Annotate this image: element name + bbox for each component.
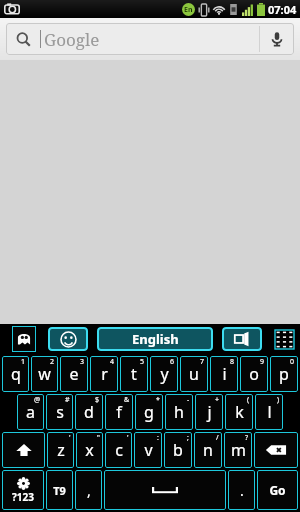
button[interactable]: Google <box>6 23 294 55</box>
staticText: o <box>249 363 259 385</box>
staticText: + <box>215 395 220 405</box>
staticText: 2 <box>50 357 55 367</box>
staticText: Go <box>269 482 286 498</box>
staticText: ) <box>277 395 280 405</box>
staticText: ( <box>247 395 250 405</box>
button[interactable]: c <box>105 432 132 468</box>
button[interactable]: T9 <box>46 470 73 510</box>
button[interactable]: Symbols <box>2 470 44 510</box>
staticText: i <box>222 363 227 385</box>
staticText: k <box>235 401 244 423</box>
button[interactable]: n <box>194 432 222 468</box>
staticText: 07:04 <box>268 2 297 17</box>
staticText: ' <box>127 433 129 443</box>
staticText: . <box>240 481 244 500</box>
button[interactable]: o <box>240 356 268 392</box>
staticText: j <box>207 401 212 423</box>
staticText: c <box>115 439 123 461</box>
staticText: y <box>160 363 169 385</box>
staticText: - <box>187 395 190 405</box>
staticText: g <box>144 401 154 423</box>
button[interactable]: l <box>255 394 283 430</box>
staticText: p <box>279 363 289 385</box>
staticText: ' <box>69 433 71 443</box>
staticText: l <box>267 401 272 423</box>
button[interactable]: f <box>105 394 133 430</box>
button[interactable]: Ghost <box>12 326 36 352</box>
staticText: / <box>216 433 219 443</box>
staticText: ; <box>187 433 189 443</box>
button[interactable]: . <box>228 470 255 510</box>
staticText: e <box>69 363 79 385</box>
button[interactable]: u <box>180 356 208 392</box>
staticText: n <box>203 439 213 461</box>
button[interactable]: r <box>90 356 118 392</box>
staticText: * <box>156 395 160 405</box>
staticText: : <box>157 433 159 443</box>
button[interactable]: w <box>31 356 58 392</box>
button[interactable]: z <box>47 432 74 468</box>
staticText: @ <box>34 395 41 405</box>
staticText: ?123 <box>12 490 34 504</box>
staticText: z <box>57 439 65 461</box>
button[interactable]: Space <box>104 470 226 510</box>
staticText: 6 <box>170 357 175 367</box>
button[interactable]: Keypad <box>271 326 297 352</box>
staticText: T9 <box>53 483 66 498</box>
staticText: a <box>26 401 35 423</box>
button[interactable]: g <box>135 394 163 430</box>
staticText: s <box>56 401 64 423</box>
button[interactable]: q <box>2 356 29 392</box>
button[interactable]: k <box>225 394 253 430</box>
staticText: 8 <box>230 357 235 367</box>
button[interactable]: Go <box>257 470 298 510</box>
staticText: d <box>84 401 94 423</box>
staticText: 5 <box>140 357 145 367</box>
staticText: 4 <box>110 357 115 367</box>
staticText: # <box>65 395 70 405</box>
button[interactable]: Shift <box>2 432 45 468</box>
button[interactable]: English <box>97 327 213 351</box>
button[interactable]: i <box>210 356 238 392</box>
button[interactable]: , <box>75 470 102 510</box>
button[interactable]: s <box>46 394 73 430</box>
staticText: u <box>189 363 199 385</box>
staticText: 7 <box>200 357 205 367</box>
staticText: 1 <box>21 357 26 367</box>
staticText: w <box>38 363 51 385</box>
staticText: 0 <box>290 357 295 367</box>
staticText: English <box>132 330 179 348</box>
button[interactable]: j <box>195 394 223 430</box>
button[interactable]: Voice search <box>260 23 294 55</box>
button[interactable]: t <box>120 356 148 392</box>
button[interactable]: Backspace <box>254 432 298 468</box>
staticText: q <box>11 363 21 385</box>
button[interactable]: a <box>17 394 44 430</box>
staticText: 9 <box>260 357 265 367</box>
staticText: m <box>231 439 246 461</box>
button[interactable]: y <box>150 356 178 392</box>
button[interactable]: e <box>60 356 88 392</box>
button[interactable]: Emoji <box>48 327 88 351</box>
staticText: $ <box>95 395 100 405</box>
button[interactable]: b <box>164 432 192 468</box>
button[interactable]: h <box>165 394 193 430</box>
button[interactable]: p <box>270 356 298 392</box>
staticText: r <box>101 363 108 385</box>
staticText: Google <box>44 28 100 51</box>
staticText: ? <box>245 433 249 443</box>
staticText: En <box>184 5 193 15</box>
staticText: x <box>85 439 94 461</box>
button[interactable]: m <box>224 432 252 468</box>
staticText: " <box>97 433 100 443</box>
staticText: 3 <box>80 357 85 367</box>
button[interactable]: x <box>76 432 103 468</box>
staticText: t <box>131 363 137 385</box>
button[interactable]: v <box>134 432 162 468</box>
button[interactable]: Layout <box>222 327 262 351</box>
button[interactable]: d <box>75 394 103 430</box>
staticText: v <box>144 439 153 461</box>
staticText: , <box>87 481 91 500</box>
staticText: h <box>174 401 184 423</box>
staticText: b <box>173 439 183 461</box>
